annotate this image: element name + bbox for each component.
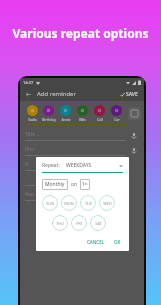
button[interactable]: SAVE: [118, 89, 140, 100]
staticText: Car: [114, 117, 120, 122]
button[interactable]: Bills: [74, 105, 91, 122]
staticText: SAVE: [126, 91, 138, 98]
button[interactable]: WED: [99, 195, 115, 211]
button[interactable]: SAT: [90, 215, 106, 231]
button[interactable]: Birthday: [40, 105, 57, 122]
staticText: Pho: [25, 146, 35, 153]
button[interactable]: Voice input: [129, 146, 139, 156]
staticText: THU: [56, 221, 64, 226]
staticText: Title ...: [25, 131, 41, 138]
staticText: Monthly: [45, 181, 65, 188]
staticText: CANCEL: [87, 239, 105, 245]
staticText: Repeat:: [42, 162, 60, 169]
staticText: WEEKDAYS: [66, 162, 92, 169]
button[interactable]: THU: [52, 215, 68, 231]
button[interactable]: Tasks: [24, 105, 40, 122]
staticText: Bills: [79, 117, 86, 122]
button[interactable]: FRI: [71, 215, 87, 231]
staticText: OK: [114, 239, 121, 245]
staticText: Anniv: [61, 117, 71, 122]
staticText: on: [71, 181, 78, 188]
button[interactable]: Back: [24, 90, 33, 99]
button[interactable]: MON: [61, 195, 77, 211]
staticText: Tasks: [28, 117, 37, 122]
staticText: 14:37: [23, 80, 34, 85]
staticText: TUE: [85, 201, 92, 206]
button[interactable]: Repeat:: [42, 162, 123, 169]
button[interactable]: SUN: [42, 195, 58, 211]
staticText: Birthday: [42, 117, 56, 122]
staticText: SAT: [95, 221, 102, 226]
staticText: SUN: [46, 201, 54, 206]
staticText: 1ˢᵗ: [82, 181, 88, 188]
button[interactable]: Voice input: [129, 131, 139, 141]
button[interactable]: Anniv: [57, 105, 74, 122]
staticText: FRI: [76, 221, 82, 226]
button[interactable]: TUE: [80, 195, 96, 211]
button[interactable]: Monthly: [42, 179, 68, 190]
button[interactable]: Car: [108, 105, 125, 122]
button[interactable]: OK: [112, 238, 123, 246]
staticText: N: [25, 161, 29, 168]
staticText: Various repeat options: [4, 25, 157, 41]
staticText: Rep: [25, 191, 35, 198]
button[interactable]: Add image: [128, 107, 141, 120]
button[interactable]: 1ˢᵗ: [80, 179, 90, 190]
staticText: WED: [103, 201, 112, 206]
staticText: Call: [97, 117, 103, 122]
staticText: Add reminder: [37, 90, 76, 98]
staticText: MON: [64, 201, 74, 206]
button[interactable]: Call: [91, 105, 108, 122]
button[interactable]: CANCEL: [85, 238, 107, 246]
